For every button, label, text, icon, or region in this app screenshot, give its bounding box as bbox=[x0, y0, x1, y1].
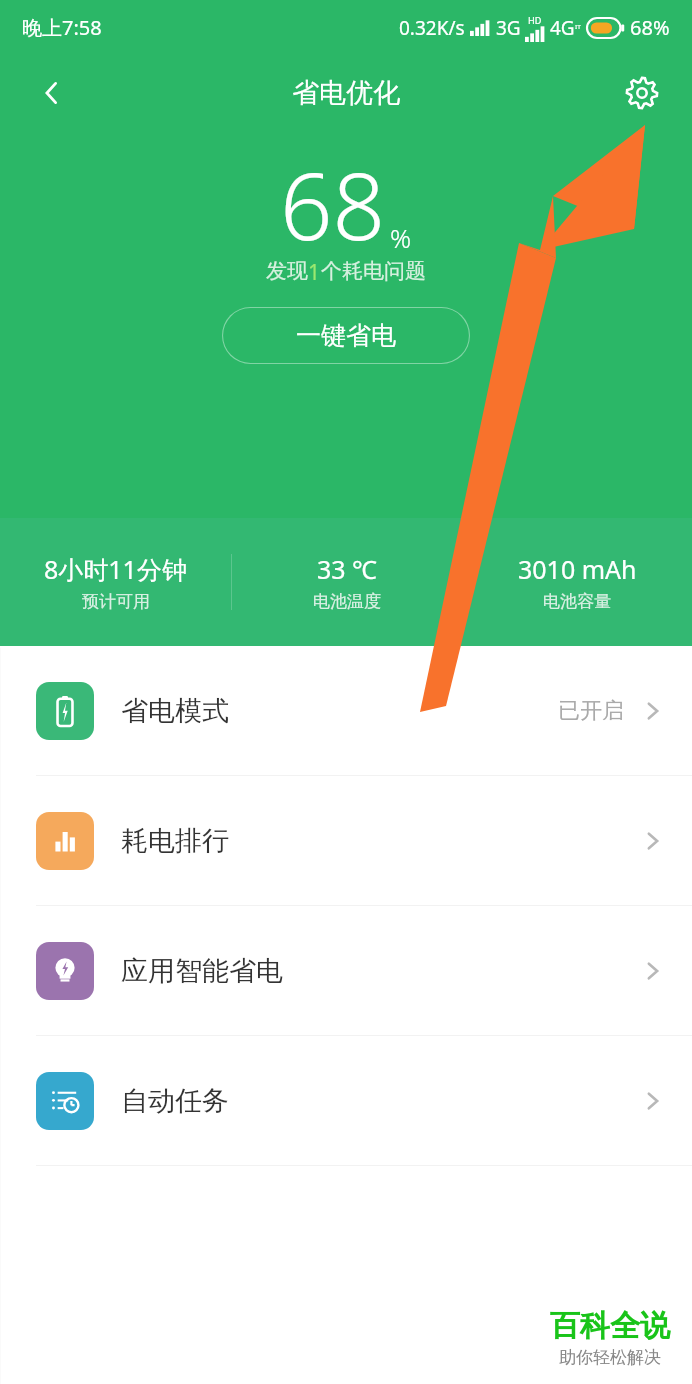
staticText: 68% bbox=[630, 14, 670, 41]
button[interactable]: 耗电排行 bbox=[0, 776, 692, 905]
staticText: 33 ℃ bbox=[317, 552, 377, 586]
staticText: 4G bbox=[550, 15, 575, 41]
button[interactable]: 一键省电 bbox=[222, 307, 470, 364]
staticText: 已开启 bbox=[558, 697, 624, 725]
staticText: 省电模式 bbox=[121, 694, 229, 728]
staticText: 0.32K/s bbox=[399, 15, 465, 41]
staticText: 3010 mAh bbox=[518, 552, 637, 586]
staticText: 应用智能省电 bbox=[121, 954, 283, 988]
staticText: 晚上7:58 bbox=[22, 14, 102, 41]
staticText: 一键省电 bbox=[296, 320, 396, 351]
staticText: % bbox=[390, 220, 412, 255]
staticText: 8小时11分钟 bbox=[44, 552, 187, 586]
staticText: 1 bbox=[308, 258, 321, 287]
button[interactable]: Back bbox=[26, 67, 78, 119]
staticText: 预计可用 bbox=[82, 591, 150, 612]
staticText: 百科全说 bbox=[550, 1307, 670, 1345]
staticText: HD bbox=[528, 14, 542, 26]
button[interactable]: 应用智能省电 bbox=[0, 906, 692, 1035]
staticText: 发现 bbox=[266, 258, 308, 284]
button[interactable]: Settings bbox=[616, 67, 668, 119]
button[interactable]: 省电模式 bbox=[0, 646, 692, 775]
staticText: 3G bbox=[496, 15, 521, 41]
button[interactable]: 自动任务 bbox=[0, 1036, 692, 1165]
staticText: 个耗电问题 bbox=[321, 258, 426, 284]
staticText: 耗电排行 bbox=[121, 824, 229, 858]
staticText: 68 bbox=[280, 142, 386, 267]
staticText: 电池容量 bbox=[543, 591, 611, 612]
staticText: ᴵᵀ bbox=[575, 21, 581, 35]
staticText: 自动任务 bbox=[121, 1084, 229, 1118]
staticText: 助你轻松解决 bbox=[559, 1347, 661, 1368]
staticText: 省电优化 bbox=[292, 76, 400, 110]
staticText: 电池温度 bbox=[313, 591, 381, 612]
